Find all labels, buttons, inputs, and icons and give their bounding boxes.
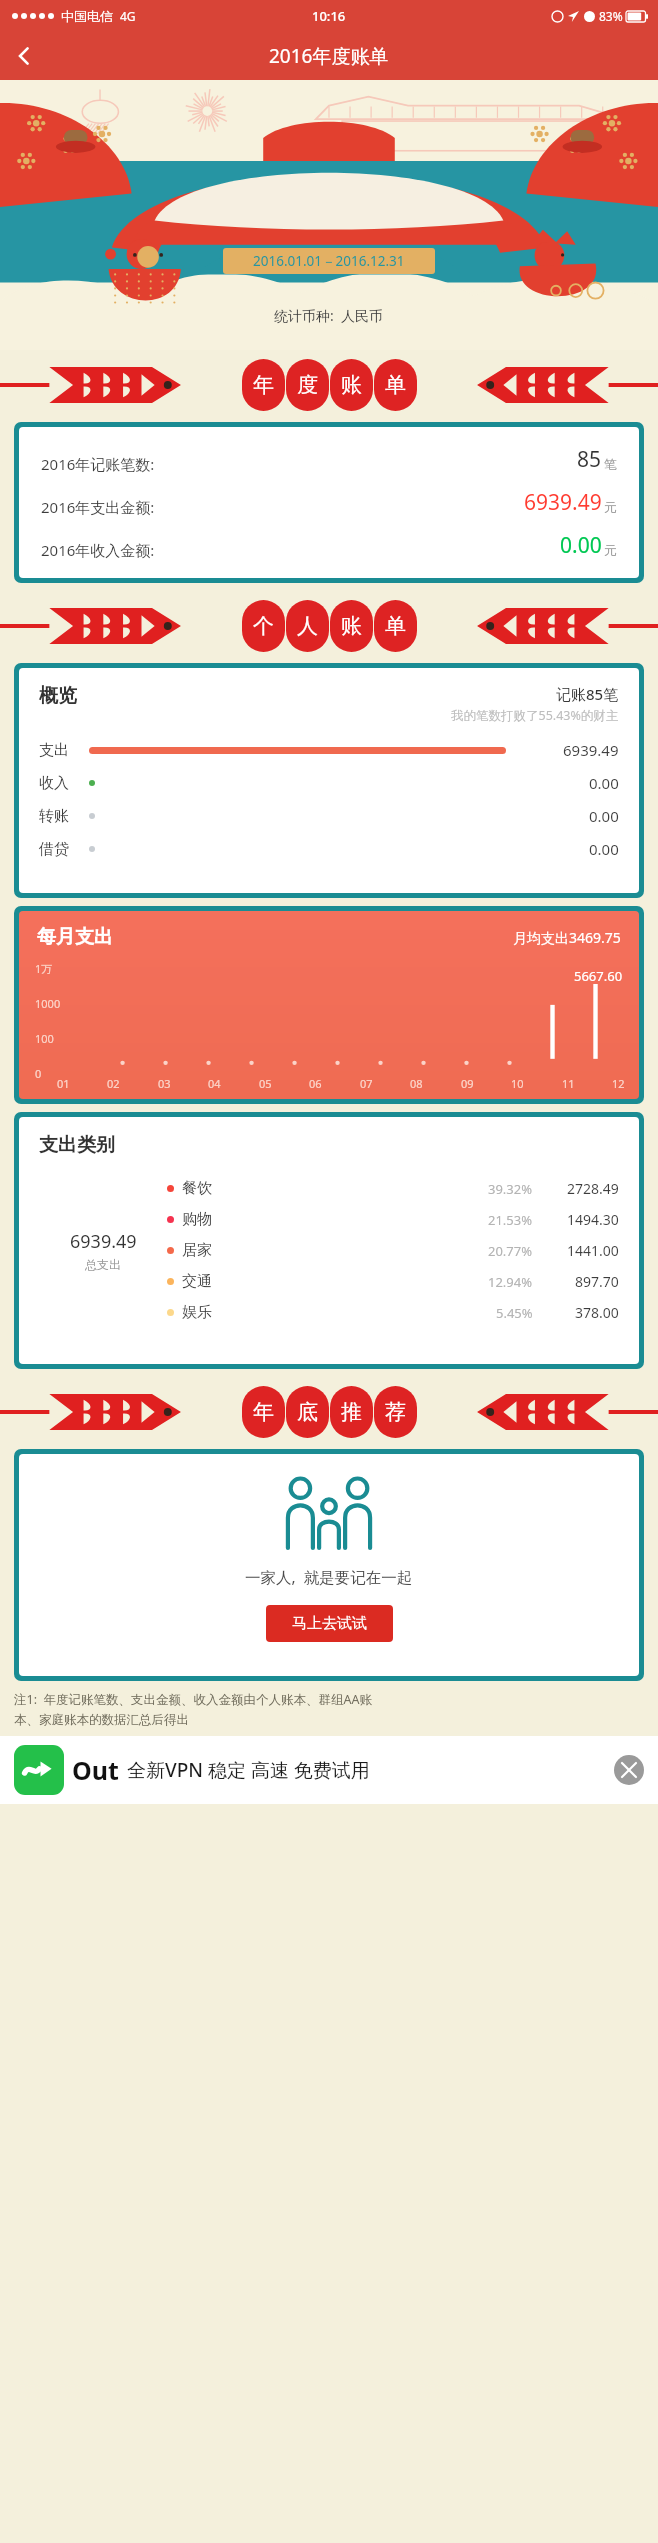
staticText: 5667.60	[574, 967, 623, 985]
staticText: 5.45%	[496, 1304, 533, 1322]
staticText: 支出	[39, 741, 83, 760]
staticText: 2016年收入金额:	[41, 540, 155, 560]
staticText: 居家	[182, 1241, 230, 1260]
staticText: 单	[385, 613, 406, 639]
staticText: 0.00	[589, 806, 619, 826]
staticText: 21.53%	[488, 1211, 533, 1229]
staticText: 全新VPN 稳定 高速 免费试用	[127, 1757, 370, 1783]
staticText: 1441.00	[567, 1241, 619, 1260]
staticText: 注1: 年度记账笔数、支出金额、收入金额由个人账本、群组AA账 本、家庭账本的数…	[14, 1691, 372, 1728]
staticText: 统计币种: 人民币	[274, 306, 384, 325]
staticText: 单	[385, 372, 406, 398]
staticText: 04	[208, 1076, 221, 1091]
staticText: 笔	[604, 456, 617, 472]
staticText: 6939.49	[524, 488, 602, 517]
staticText: 支出类别	[39, 1133, 115, 1157]
staticText: 购物	[182, 1210, 230, 1229]
staticText: Out	[72, 1753, 119, 1787]
staticText: 0.00	[560, 531, 602, 560]
staticText: 底	[297, 1399, 318, 1425]
staticText: 07	[360, 1076, 373, 1091]
staticText: 转账	[39, 807, 83, 826]
staticText: 378.00	[575, 1303, 619, 1322]
staticText: 我的笔数打败了55.43%的财主	[451, 707, 619, 724]
staticText: 个	[253, 613, 274, 639]
staticText: 借贷	[39, 840, 83, 859]
staticText: 每月支出	[37, 925, 113, 949]
staticText: 荐	[385, 1399, 406, 1425]
staticText: 6939.49	[70, 1229, 137, 1254]
staticText: 100	[35, 1031, 54, 1046]
staticText: 02	[107, 1076, 120, 1091]
staticText: 度	[297, 372, 318, 398]
staticText: 2016年记账笔数:	[41, 454, 155, 474]
staticText: 05	[259, 1076, 272, 1091]
staticText: 6939.49	[563, 740, 619, 760]
staticText: 10	[511, 1076, 524, 1091]
staticText: 账	[341, 613, 362, 639]
staticText: 06	[309, 1076, 322, 1091]
staticText: 中国电信	[61, 8, 113, 24]
staticText: 1494.30	[567, 1210, 619, 1229]
staticText: 20.77%	[488, 1242, 533, 1260]
staticText: 餐饮	[182, 1179, 230, 1198]
staticText: 85	[577, 445, 602, 474]
staticText: 交通	[182, 1272, 230, 1291]
staticText: 01	[57, 1076, 70, 1091]
staticText: 娱乐	[182, 1303, 230, 1322]
staticText: 2016.01.01－2016.12.31	[253, 252, 405, 270]
staticText: 概览	[39, 684, 77, 708]
staticText: 0.00	[589, 773, 619, 793]
button[interactable]: Back	[0, 32, 48, 80]
staticText: 元	[604, 542, 617, 558]
staticText: 2728.49	[567, 1179, 619, 1198]
staticText: 2016年支出金额:	[41, 497, 155, 517]
staticText: 记账85笔	[556, 684, 619, 704]
staticText: 收入	[39, 774, 83, 793]
staticText: 推	[341, 1399, 362, 1425]
staticText: 897.70	[575, 1272, 619, 1291]
button[interactable]: 马上去试试	[266, 1605, 393, 1642]
staticText: 12	[612, 1076, 625, 1091]
button[interactable]: Close ad	[614, 1755, 644, 1785]
staticText: 一家人, 就是要记在一起	[245, 1566, 413, 1587]
staticText: 09	[461, 1076, 474, 1091]
staticText: 总支出	[85, 1257, 121, 1272]
staticText: 10:16	[312, 7, 346, 25]
staticText: 0	[35, 1066, 42, 1081]
staticText: 39.32%	[488, 1180, 533, 1198]
staticText: 马上去试试	[292, 1614, 367, 1633]
staticText: 年	[253, 1399, 274, 1425]
staticText: 月均支出3469.75	[513, 928, 621, 947]
staticText: 1000	[35, 996, 61, 1011]
staticText: 账	[341, 372, 362, 398]
staticText: 11	[562, 1076, 575, 1091]
staticText: 1万	[35, 961, 53, 976]
staticText: 年	[253, 372, 274, 398]
staticText: 03	[158, 1076, 171, 1091]
staticText: 人	[297, 613, 318, 639]
staticText: 2016年度账单	[269, 43, 389, 69]
staticText: 08	[410, 1076, 423, 1091]
staticText: 83%	[599, 8, 623, 24]
staticText: 0.00	[589, 839, 619, 859]
staticText: 元	[604, 499, 617, 515]
staticText: 4G	[120, 8, 136, 24]
staticText: 12.94%	[488, 1273, 533, 1291]
